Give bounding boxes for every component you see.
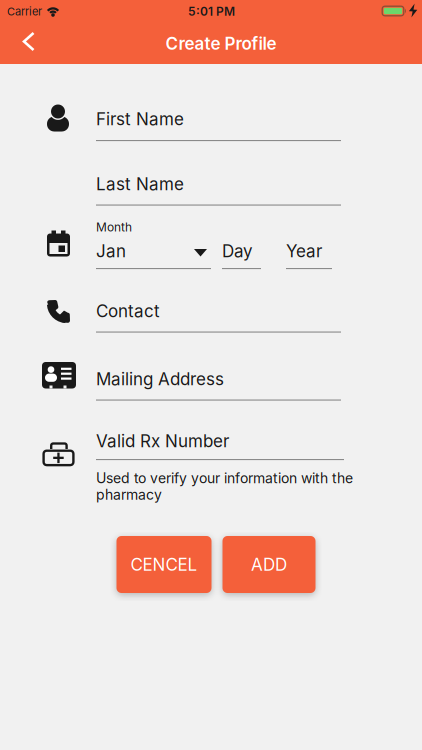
- staticText: 5:01 PM: [188, 4, 235, 19]
- staticText: Mailing Address: [96, 369, 224, 389]
- staticText: Month: [96, 220, 132, 234]
- staticText: Last Name: [96, 174, 184, 194]
- staticText: First Name: [96, 109, 184, 129]
- staticText: Valid Rx Number: [96, 431, 229, 451]
- button[interactable]: ADD: [222, 536, 315, 593]
- staticText: Used to verify your information with the…: [96, 470, 353, 503]
- button[interactable]: CENCEL: [116, 536, 211, 593]
- button[interactable]: Back: [0, 0, 44, 44]
- staticText: Carrier: [7, 5, 42, 18]
- button[interactable]: Month: [96, 236, 211, 270]
- staticText: Day: [222, 241, 253, 261]
- staticText: Contact: [96, 301, 160, 321]
- staticText: ADD: [251, 554, 287, 575]
- staticText: CENCEL: [130, 554, 197, 575]
- staticText: Create Profile: [165, 33, 276, 54]
- staticText: Year: [286, 241, 322, 261]
- staticText: Jan: [96, 241, 126, 261]
